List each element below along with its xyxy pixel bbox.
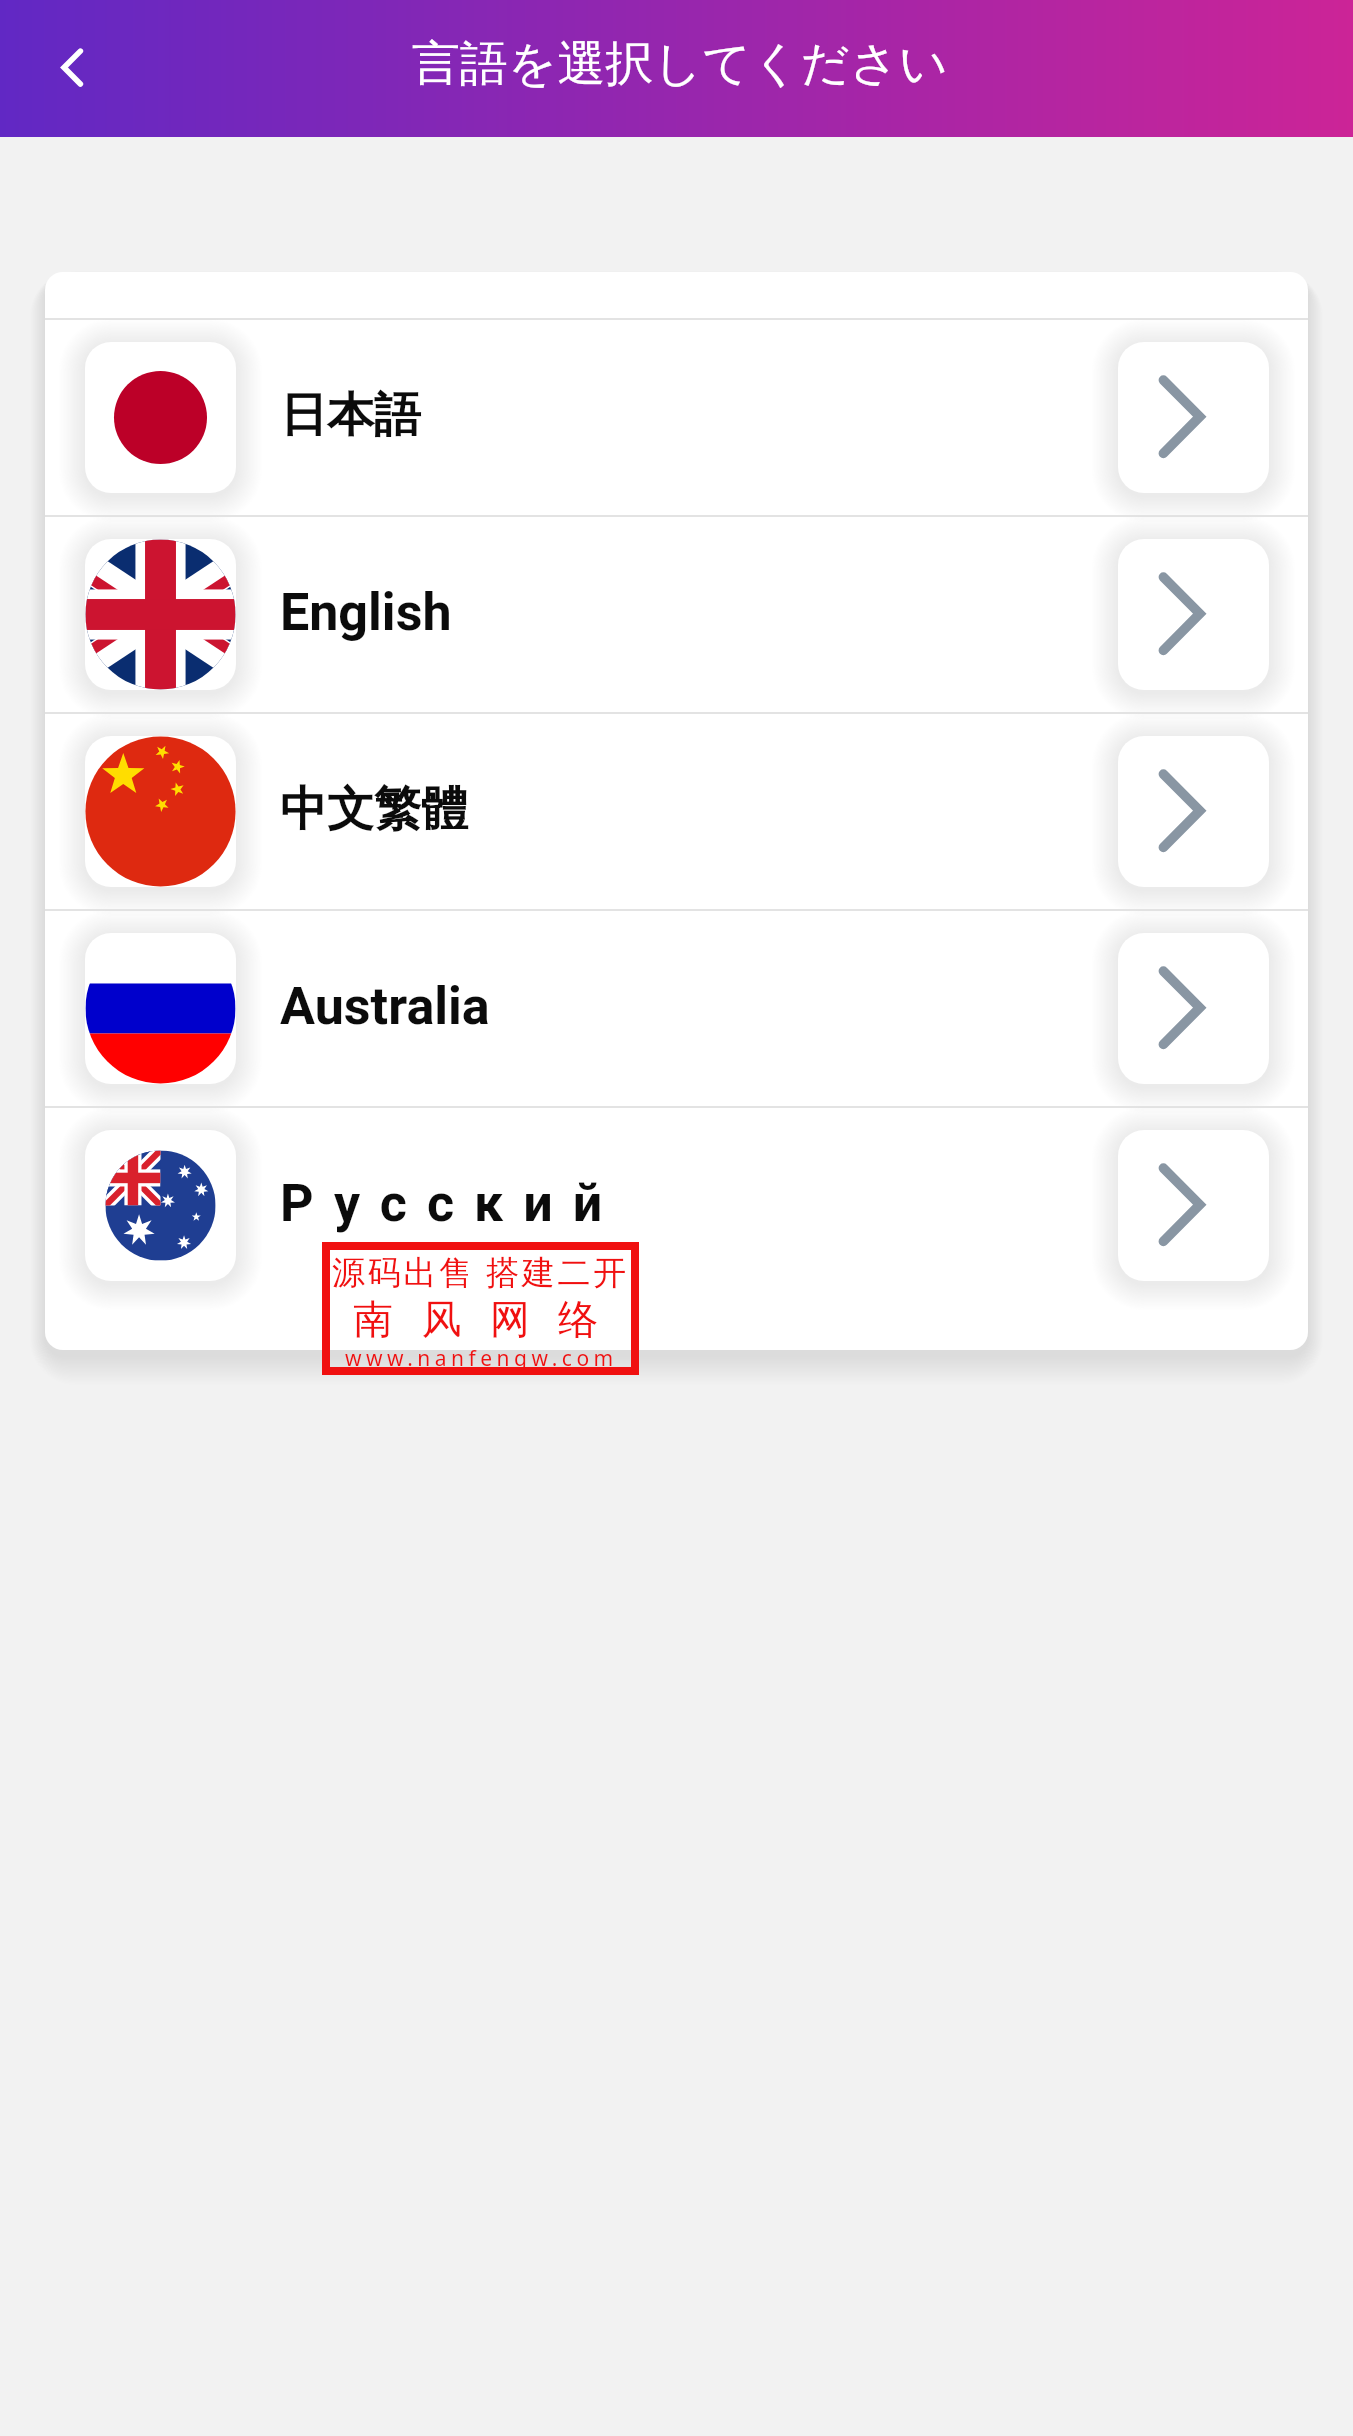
button[interactable]: 中文繁體 [45, 714, 1308, 909]
staticText: 中文繁體 [280, 780, 468, 839]
button[interactable]: 日本語 [45, 320, 1308, 515]
button[interactable]: English [45, 517, 1308, 712]
staticText: Русский [280, 1173, 623, 1234]
button[interactable]: Open Australia [1118, 933, 1269, 1084]
button[interactable]: Back [26, 23, 118, 115]
staticText: Australia [280, 976, 490, 1037]
button[interactable]: Australia [45, 911, 1308, 1106]
staticText: English [280, 582, 452, 643]
button[interactable]: Open 日本語 [1118, 342, 1269, 493]
button[interactable]: Open English [1118, 539, 1269, 690]
staticText: 日本語 [280, 386, 421, 445]
button[interactable]: Open Русский [1118, 1130, 1269, 1281]
button[interactable]: Open 中文繁體 [1118, 736, 1269, 887]
button[interactable]: Русский [45, 1108, 1308, 1303]
staticText: 南 风 网 络 [353, 1290, 608, 1345]
staticText: www.nanfengw.com [345, 1344, 618, 1373]
staticText: 言語を選択してください [412, 34, 948, 94]
staticText: 源码出售 搭建二开 [332, 1249, 629, 1294]
